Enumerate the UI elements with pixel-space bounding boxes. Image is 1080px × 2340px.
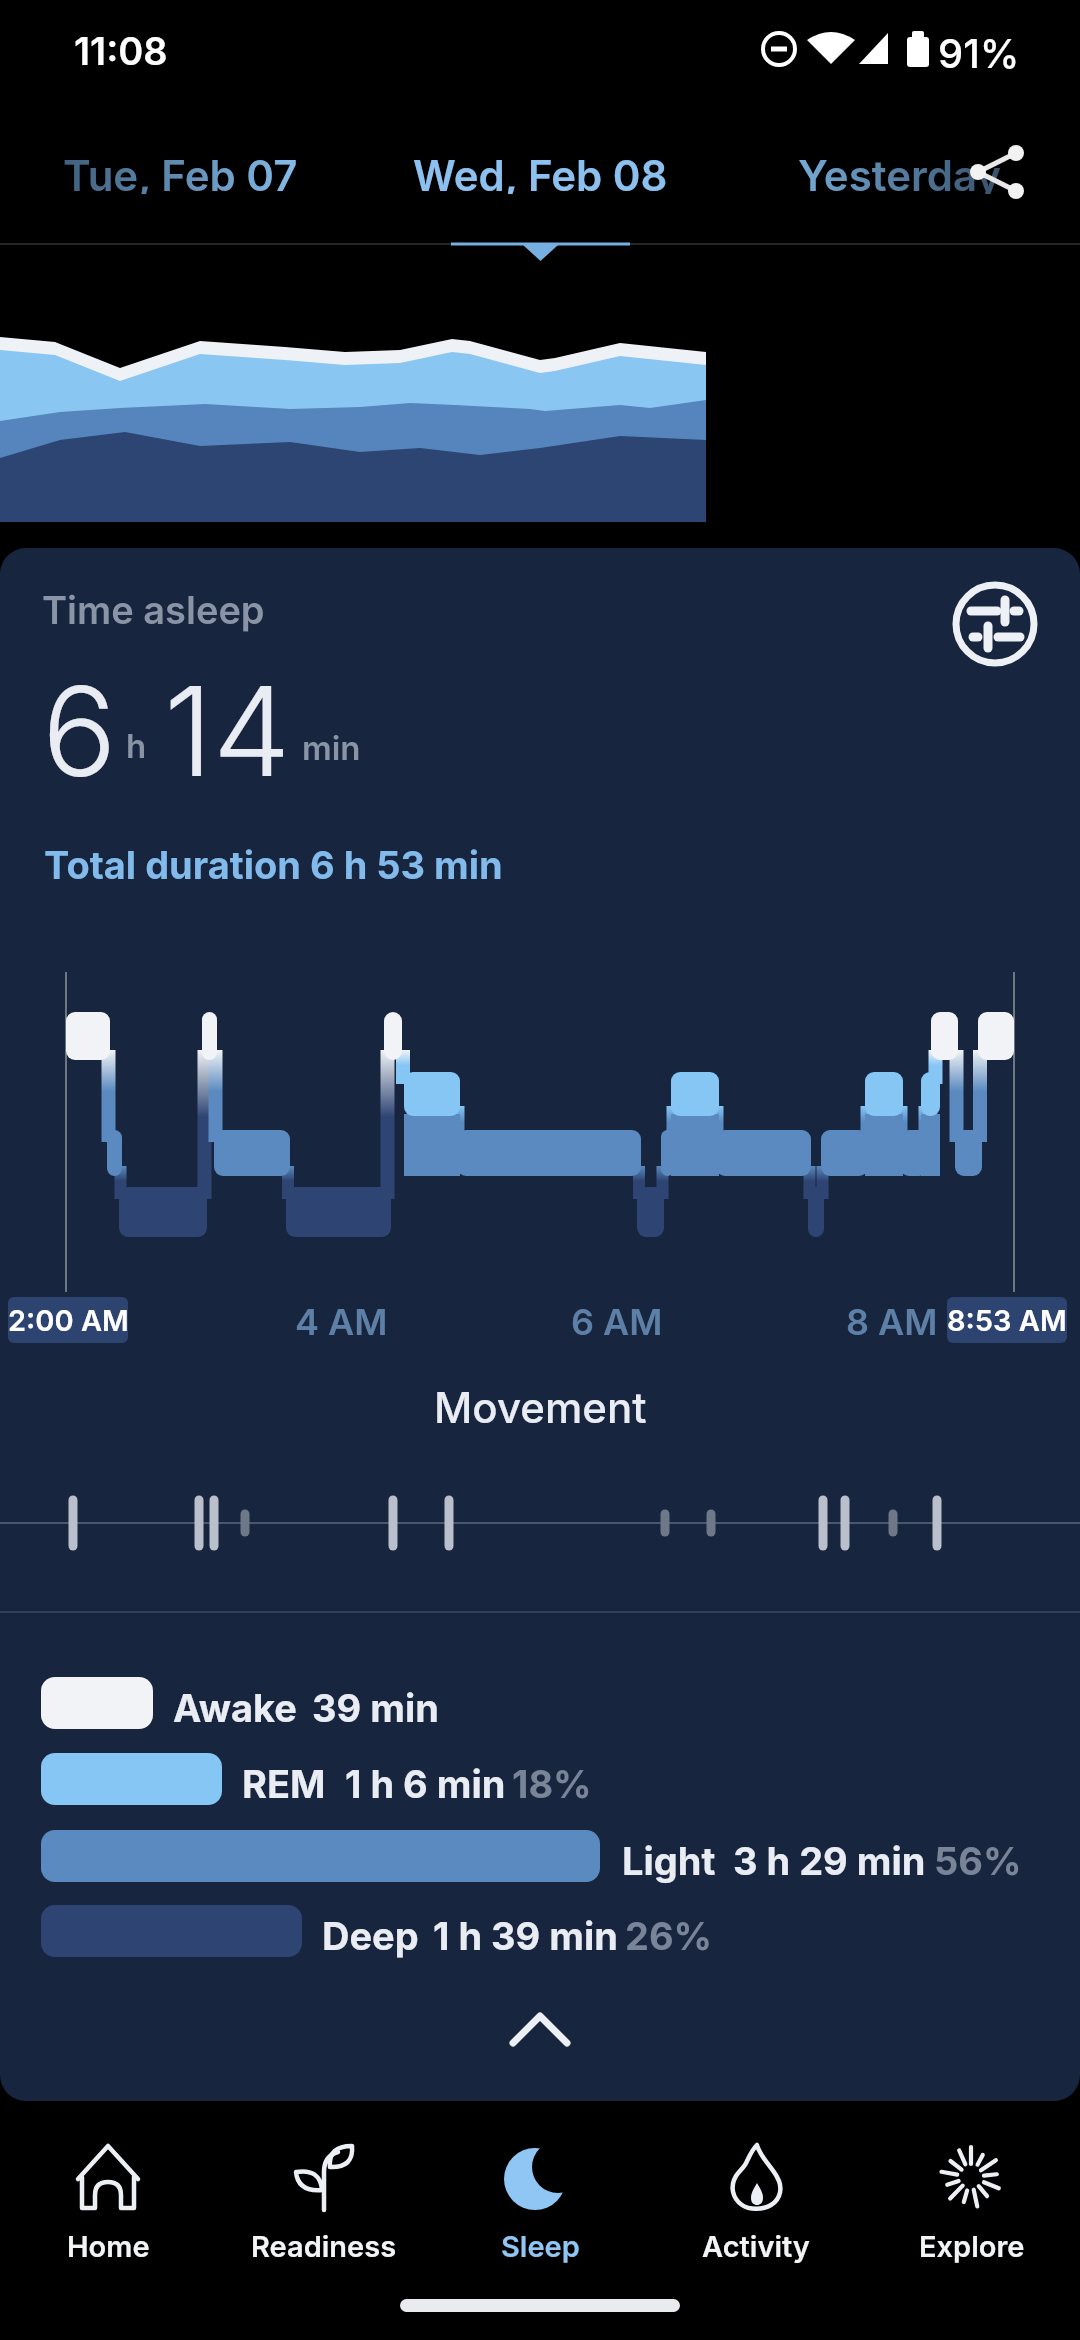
staticText: Awake [173,1685,297,1731]
button[interactable]: Home [18,2128,198,2278]
staticText: 14 [164,656,291,806]
staticText: Time asleep [42,587,265,633]
staticText: 1 h 39 min [433,1913,618,1959]
button[interactable]: Wed, Feb 08 [400,150,680,194]
button[interactable]: Tue, Feb 07 [50,150,310,194]
button[interactable]: Explore [882,2128,1062,2278]
staticText: 56% [934,1838,1022,1884]
button[interactable]: Activity [666,2128,846,2278]
staticText: Sleep [501,2229,580,2264]
staticText: Explore [919,2229,1025,2264]
staticText: h [126,726,147,766]
staticText: 3 h 29 min [733,1838,926,1884]
staticText: Movement [434,1382,647,1430]
staticText: Home [67,2229,150,2264]
staticText: Readiness [251,2229,397,2264]
staticText: 8 AM [846,1300,938,1344]
button[interactable] [950,579,1040,669]
staticText: 11:08 [74,28,168,74]
button[interactable]: Sleep [450,2128,630,2278]
staticText: REM [242,1761,326,1807]
staticText: 26% [625,1913,713,1959]
staticText: Tue, Feb 07 [63,150,298,194]
staticText: Wed, Feb 08 [413,150,668,194]
button[interactable] [490,1990,590,2070]
staticText: 4 AM [295,1300,388,1344]
staticText: 18% [512,1761,592,1807]
button[interactable]: Yesterday [780,150,1020,194]
staticText: Light [622,1838,716,1884]
button[interactable] [955,135,1035,215]
staticText: 6 AM [571,1300,663,1344]
staticText: 6 [42,656,117,806]
staticText: Total duration 6 h 53 min [44,842,503,888]
staticText: 1 h 6 min [345,1761,506,1807]
staticText: min [302,728,361,768]
button[interactable]: Readiness [234,2128,414,2278]
staticText: 2:00 AM [8,1303,128,1338]
staticText: Yesterday [798,150,1002,194]
staticText: Deep [322,1913,419,1959]
staticText: 8:53 AM [947,1303,1067,1338]
staticText: 39 min [312,1685,439,1731]
staticText: Activity [702,2229,810,2264]
staticText: 91% [938,29,1020,77]
